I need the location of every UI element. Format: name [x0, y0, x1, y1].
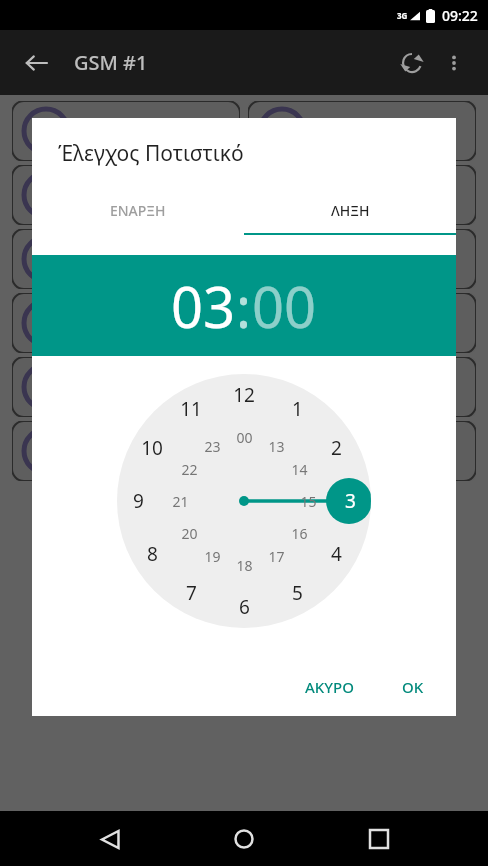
- staticText: 8: [147, 541, 158, 567]
- staticText: 15: [300, 492, 317, 511]
- button[interactable]: Home: [219, 814, 269, 864]
- button[interactable]: ΛΗΞΗ: [244, 188, 456, 233]
- staticText: ΑΚΥΡΟ: [305, 677, 354, 697]
- staticText: 21: [172, 492, 189, 511]
- staticText: 09:22: [442, 6, 478, 25]
- button[interactable]: [12, 293, 240, 353]
- staticText: 12: [233, 382, 255, 408]
- staticText: 5: [292, 580, 303, 606]
- button[interactable]: 12: [117, 374, 371, 628]
- button[interactable]: ΑΚΥΡΟ: [291, 669, 368, 705]
- staticText: OK: [402, 677, 424, 697]
- staticText: Έλεγχος Ποτιστικό: [58, 139, 244, 168]
- staticText: 7: [186, 580, 197, 606]
- staticText: 22: [181, 460, 198, 479]
- button[interactable]: [248, 421, 476, 481]
- button[interactable]: 03: [171, 268, 236, 344]
- staticText: 6: [239, 594, 250, 620]
- staticText: 4: [331, 541, 342, 567]
- staticText: :: [236, 268, 252, 344]
- button[interactable]: OK: [388, 669, 438, 705]
- staticText: 17: [268, 547, 285, 566]
- button[interactable]: [12, 229, 240, 289]
- staticText: 19: [204, 547, 221, 566]
- staticText: ΛΗΞΗ: [331, 201, 370, 220]
- button[interactable]: [248, 357, 476, 417]
- button[interactable]: [12, 357, 240, 417]
- staticText: ΕΝΑΡΞΗ: [110, 201, 166, 220]
- button[interactable]: Refresh: [390, 41, 434, 85]
- button[interactable]: [12, 101, 240, 161]
- staticText: 20: [181, 524, 198, 543]
- staticText: 14: [291, 460, 308, 479]
- staticText: GSM #1: [74, 49, 148, 76]
- button[interactable]: Recents: [354, 814, 404, 864]
- button[interactable]: [248, 165, 476, 225]
- button[interactable]: Back: [14, 41, 58, 85]
- staticText: 2: [331, 435, 342, 461]
- button[interactable]: More options: [434, 43, 474, 83]
- staticText: 9: [133, 488, 144, 514]
- staticText: 3: [345, 488, 356, 514]
- staticText: 18: [236, 556, 253, 575]
- staticText: 00: [236, 428, 253, 447]
- button[interactable]: [12, 165, 240, 225]
- button[interactable]: ΕΝΑΡΞΗ: [32, 188, 244, 233]
- staticText: 1: [292, 396, 303, 422]
- staticText: 16: [291, 524, 308, 543]
- button[interactable]: [248, 293, 476, 353]
- button[interactable]: [248, 229, 476, 289]
- button[interactable]: [12, 421, 240, 481]
- staticText: 13: [268, 437, 285, 456]
- button[interactable]: Back: [85, 814, 135, 864]
- staticText: 3G: [397, 10, 408, 21]
- staticText: 10: [141, 435, 163, 461]
- staticText: 11: [180, 396, 202, 422]
- button[interactable]: 00: [252, 268, 317, 344]
- staticText: 23: [204, 437, 221, 456]
- button[interactable]: [248, 101, 476, 161]
